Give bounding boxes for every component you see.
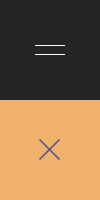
button[interactable]: Menu bbox=[0, 0, 100, 100]
button[interactable]: Close bbox=[0, 100, 100, 200]
